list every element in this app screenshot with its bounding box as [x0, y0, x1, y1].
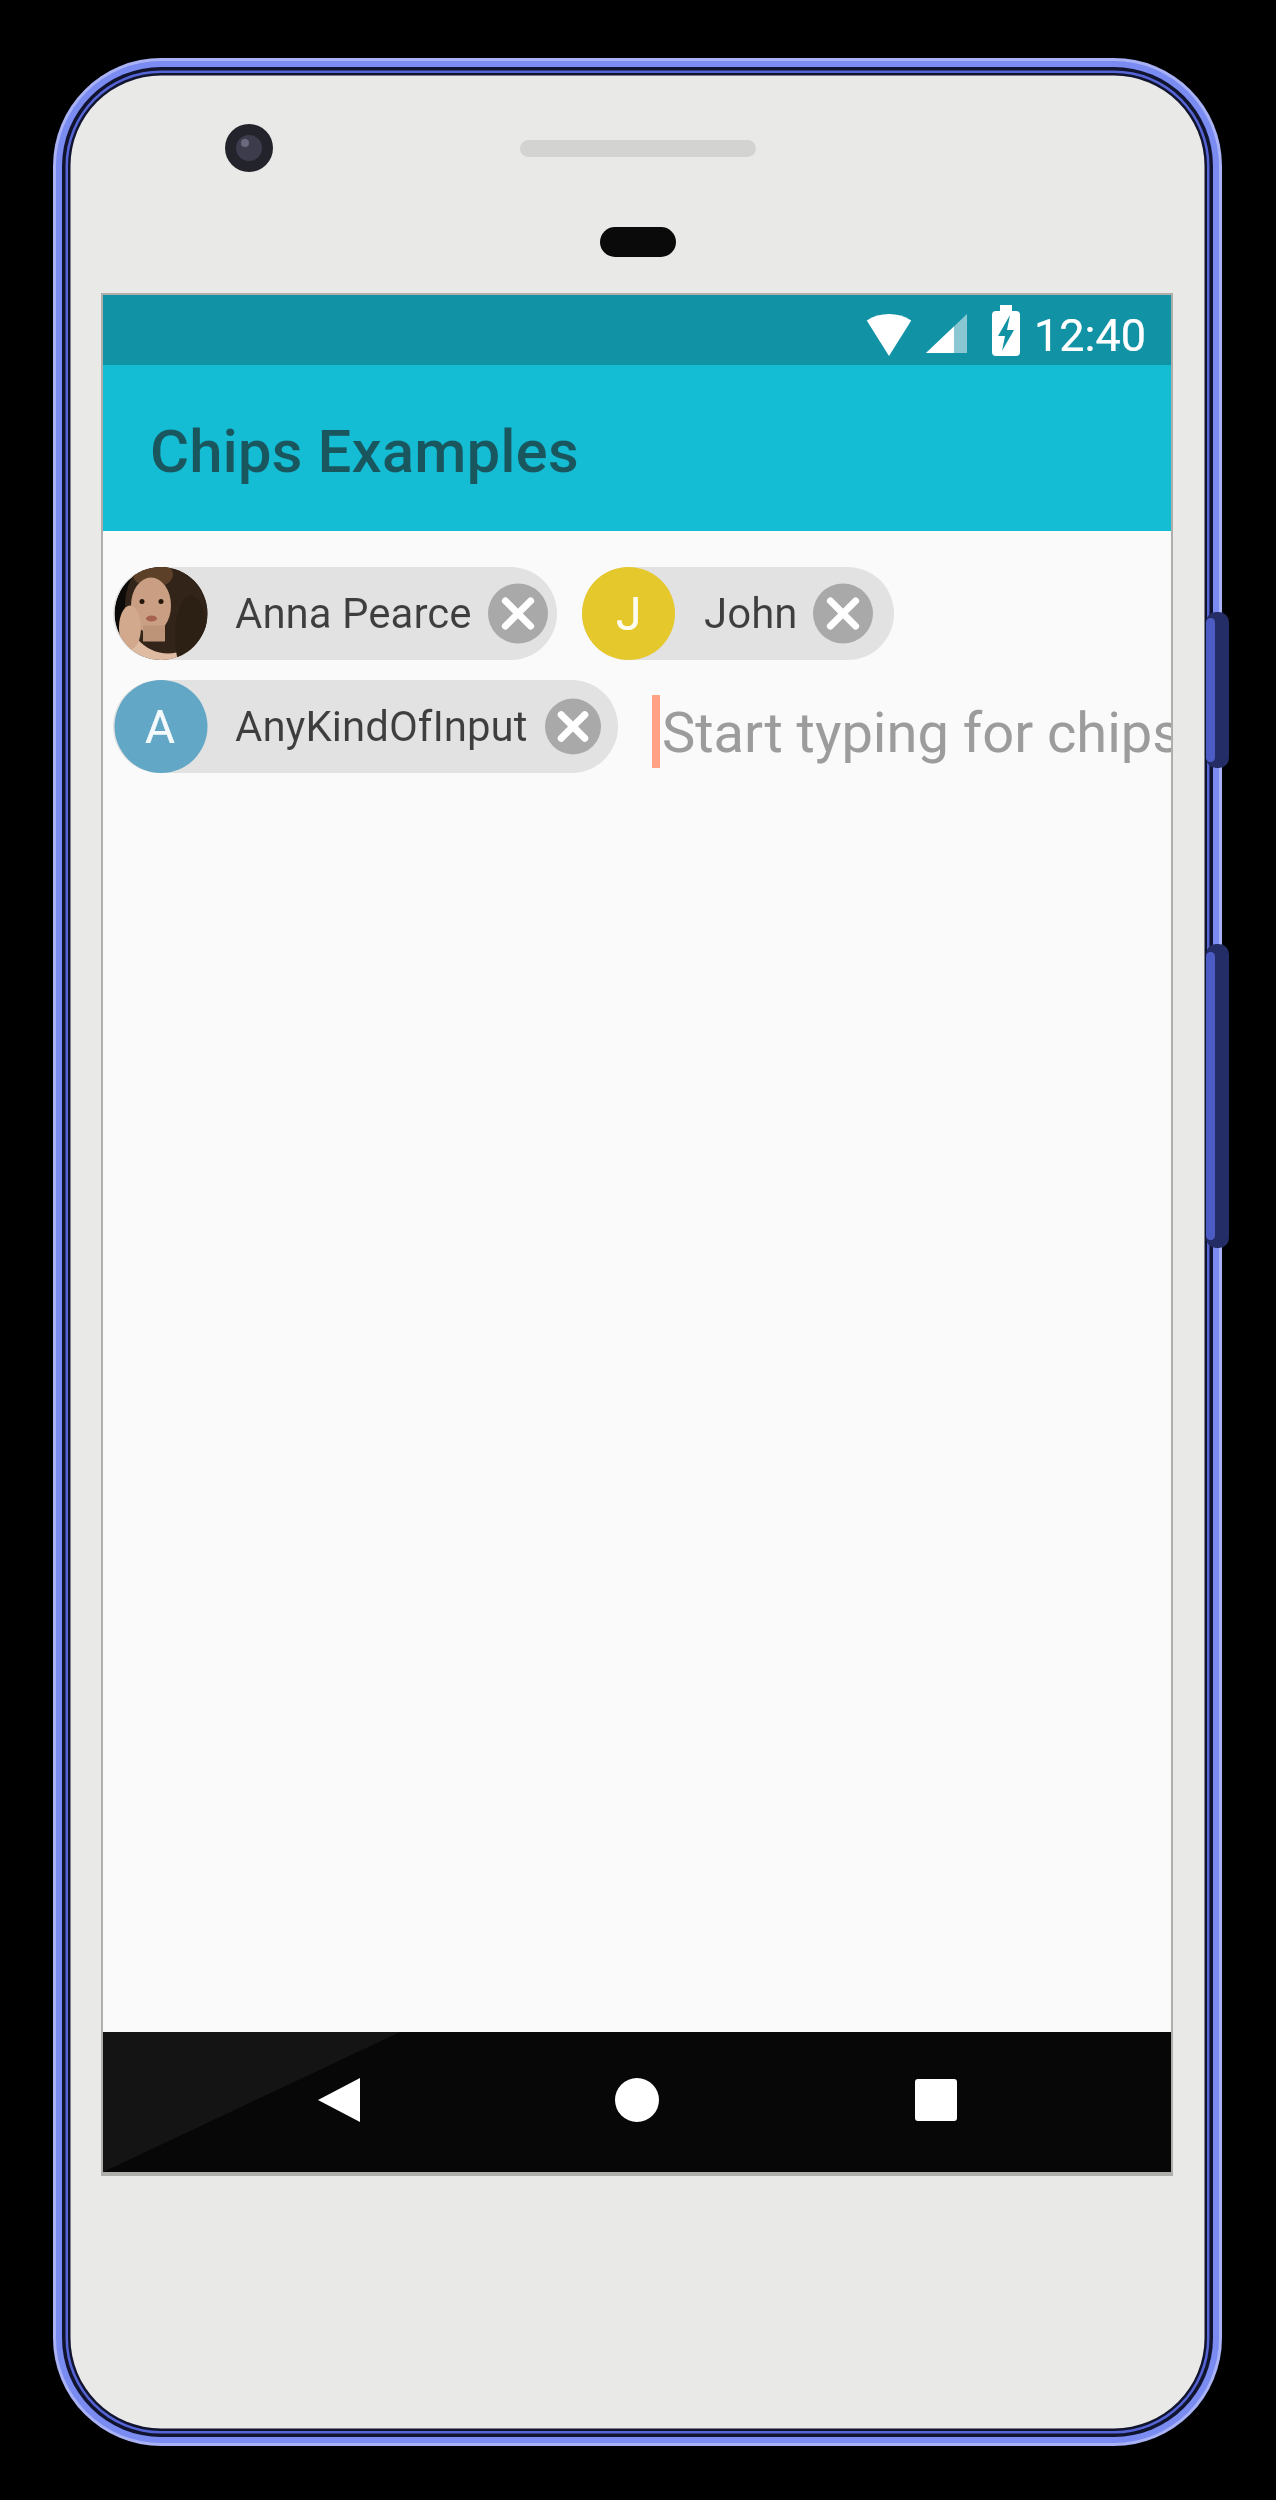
staticText: Chips Examples	[150, 416, 579, 486]
staticText: A	[145, 700, 176, 754]
staticText: J	[616, 587, 642, 641]
staticText: John	[704, 589, 798, 638]
staticText: AnyKindOfInput	[235, 702, 528, 751]
staticText: 12:40	[1034, 309, 1147, 362]
staticText: Anna Pearce	[235, 589, 472, 638]
staticText: Start typing for chips	[662, 700, 1171, 766]
